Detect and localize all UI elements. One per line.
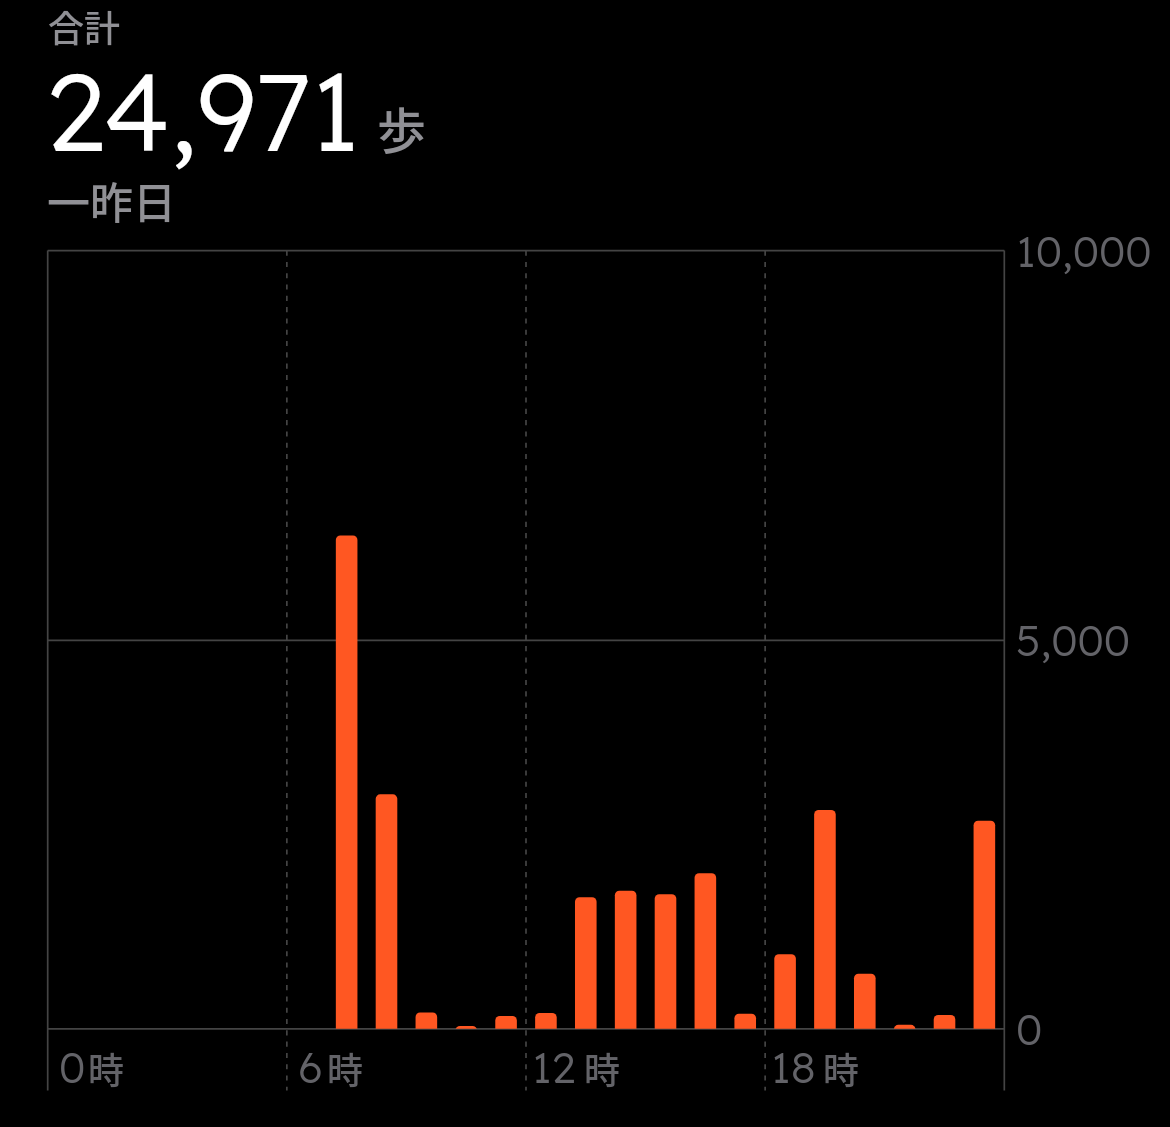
button[interactable] <box>40 0 440 228</box>
staticText: 5,000 <box>1016 613 1131 667</box>
staticText: 12 <box>532 1040 576 1094</box>
staticText: 時 <box>327 1042 364 1094</box>
staticText: 時 <box>88 1042 125 1094</box>
staticText: 時 <box>823 1042 860 1094</box>
staticText: 時 <box>584 1042 621 1094</box>
staticText: 合計 <box>48 0 121 52</box>
button[interactable]: 歩数グラフ <box>30 238 1020 1103</box>
staticText: 10,000 <box>1016 224 1152 278</box>
staticText: 6 <box>298 1040 323 1094</box>
staticText: 0 <box>59 1040 86 1094</box>
staticText: 一昨日 <box>47 169 176 231</box>
staticText: 歩 <box>377 92 427 163</box>
staticText: 18 <box>771 1040 816 1094</box>
staticText: 0 <box>1016 1002 1043 1056</box>
staticText: 24,971 <box>46 43 360 178</box>
